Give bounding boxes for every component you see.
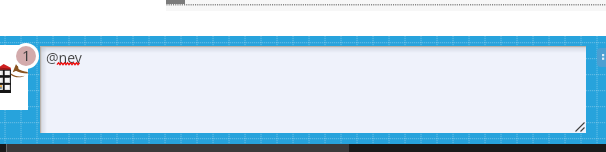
button[interactable]: @nev bbox=[40, 46, 586, 133]
button[interactable]: 1 unread bbox=[13, 43, 39, 69]
button[interactable]: More options bbox=[597, 48, 606, 67]
staticText: 1 bbox=[22, 46, 31, 65]
staticText: @nev bbox=[46, 48, 82, 67]
